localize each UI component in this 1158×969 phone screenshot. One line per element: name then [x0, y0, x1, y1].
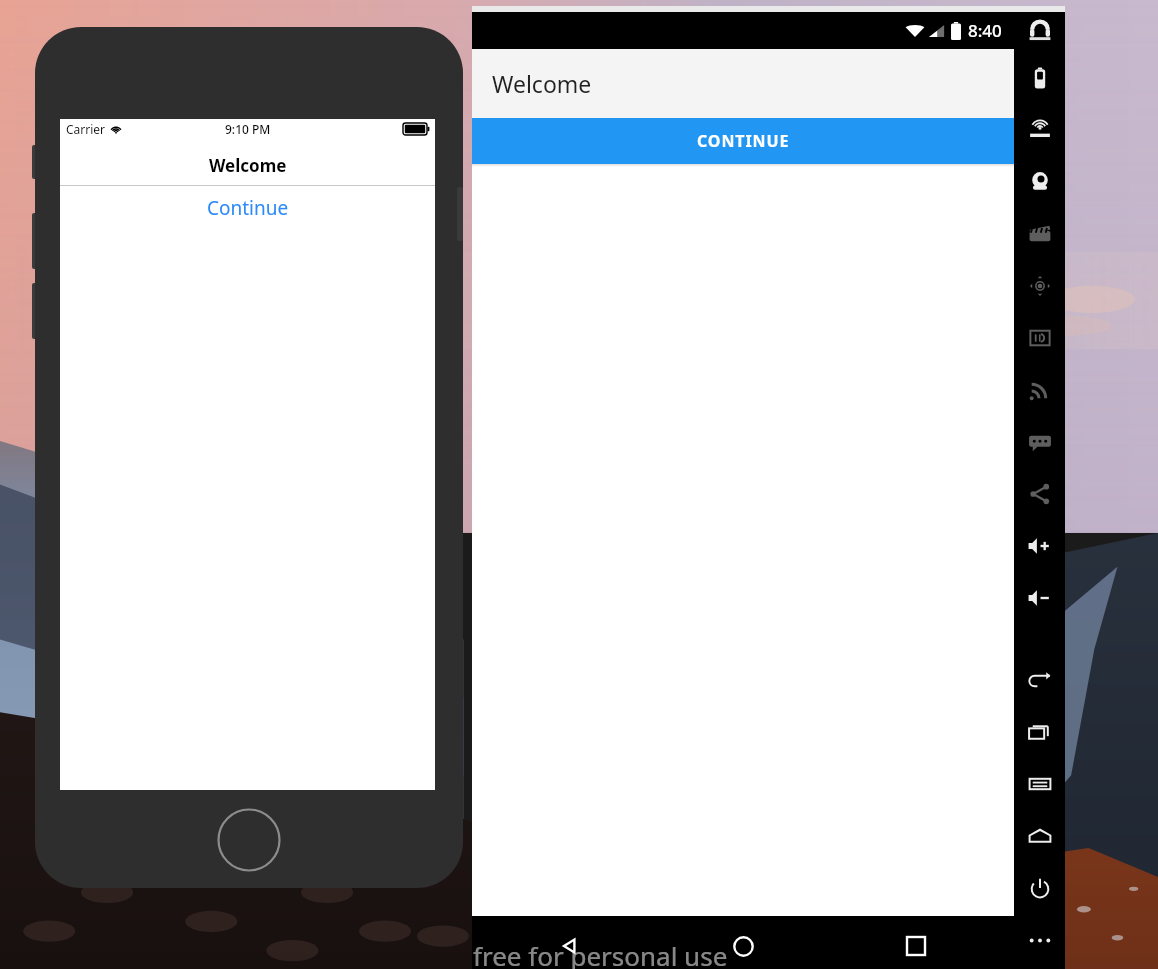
button[interactable]: Volume up [1014, 520, 1065, 572]
staticText: Welcome [209, 154, 287, 177]
staticText: CONTINUE [697, 130, 790, 152]
button[interactable]: More [1014, 914, 1065, 966]
staticText: 9:10 PM [225, 121, 271, 137]
button[interactable]: Record screen [1014, 208, 1065, 260]
button[interactable]: Battery [1014, 52, 1065, 104]
button[interactable]: Back [1014, 654, 1065, 706]
staticText: 8:40 [968, 19, 1002, 42]
button[interactable]: Share [1014, 468, 1065, 520]
staticText: Welcome [492, 68, 592, 99]
button[interactable]: Phone and SMS [1014, 416, 1065, 468]
button[interactable]: Home [1014, 810, 1065, 862]
staticText: Carrier [66, 121, 106, 137]
button[interactable]: Power [1014, 862, 1065, 914]
button[interactable]: Cellular [1014, 364, 1065, 416]
button[interactable]: CONTINUE [472, 118, 1014, 164]
button[interactable]: Recent apps [888, 918, 944, 969]
button[interactable]: Camera [1014, 156, 1065, 208]
button[interactable]: Continue [60, 186, 435, 230]
button[interactable]: Google apps [1014, 12, 1065, 52]
button[interactable]: Device identity [1014, 312, 1065, 364]
button[interactable]: Back [542, 918, 598, 969]
button[interactable]: Directional pad [1014, 260, 1065, 312]
button[interactable]: Overview [1014, 706, 1065, 758]
staticText: Continue [207, 195, 289, 221]
button[interactable]: Location GPS [1014, 104, 1065, 156]
button[interactable]: Menu [1014, 758, 1065, 810]
button[interactable]: Volume down [1014, 572, 1065, 624]
staticText: free for personal use [473, 938, 728, 969]
button[interactable]: Home [715, 918, 771, 969]
